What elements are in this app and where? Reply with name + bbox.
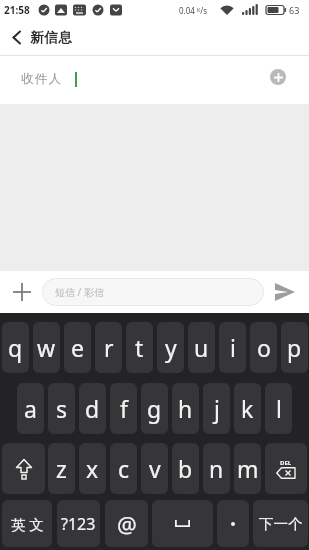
button[interactable]: k	[234, 383, 261, 434]
button[interactable]: DEL	[265, 443, 307, 494]
button[interactable]: a	[17, 383, 44, 434]
staticText: z	[56, 453, 67, 484]
button[interactable]	[274, 282, 298, 302]
button[interactable]: s	[48, 383, 75, 434]
button[interactable]	[270, 69, 286, 85]
staticText: 短信 / 彩信	[55, 285, 104, 299]
staticText: t	[135, 332, 144, 363]
staticText: g	[147, 393, 162, 424]
button[interactable]: l	[265, 383, 292, 434]
button[interactable]: q	[2, 322, 29, 373]
button[interactable]: p	[281, 322, 308, 373]
button[interactable]: d	[79, 383, 106, 434]
button[interactable]: 短信 / 彩信	[42, 278, 264, 306]
button[interactable]: x	[79, 443, 106, 494]
button[interactable]	[217, 500, 249, 547]
staticText: DEL	[280, 459, 292, 467]
button[interactable]: t	[126, 322, 153, 373]
button[interactable]: v	[141, 443, 168, 494]
staticText: d	[85, 393, 100, 424]
staticText: r	[104, 332, 114, 363]
staticText: e	[71, 332, 84, 363]
staticText: 收件人	[21, 71, 63, 87]
staticText: u	[194, 332, 209, 363]
staticText: p	[287, 332, 302, 363]
button[interactable]: @	[105, 500, 148, 547]
staticText: b	[178, 453, 193, 484]
staticText: l	[276, 393, 282, 424]
button[interactable]: y	[157, 322, 184, 373]
button[interactable]: 新信息	[0, 20, 309, 55]
staticText: v	[149, 453, 161, 484]
staticText: o	[257, 332, 271, 363]
button[interactable]: 英 文	[2, 500, 52, 547]
staticText: s	[56, 393, 68, 424]
staticText: i	[230, 332, 236, 363]
button[interactable]: n	[203, 443, 230, 494]
staticText: @	[117, 509, 137, 539]
button[interactable]: ?123	[57, 500, 100, 547]
button[interactable]	[152, 500, 213, 547]
button[interactable]: z	[48, 443, 75, 494]
staticText: h	[178, 393, 193, 424]
staticText: w	[37, 332, 56, 363]
button[interactable]: 下一个	[253, 500, 308, 547]
staticText: 英 文	[11, 514, 44, 534]
staticText: ?123	[61, 513, 96, 535]
staticText: j	[214, 393, 220, 424]
button[interactable]: c	[110, 443, 137, 494]
button[interactable]: b	[172, 443, 199, 494]
staticText: a	[24, 393, 37, 424]
staticText: y	[165, 332, 177, 363]
button[interactable]: e	[64, 322, 91, 373]
button[interactable]: h	[172, 383, 199, 434]
staticText: 21:58	[4, 3, 30, 17]
staticText: c	[118, 453, 130, 484]
button[interactable]: f	[110, 383, 137, 434]
staticText: 下一个	[259, 515, 303, 533]
staticText: 新信息	[30, 29, 73, 46]
staticText: q	[8, 332, 23, 363]
button[interactable]: 收件人	[0, 56, 309, 104]
staticText: 0.04 ᴷ/s	[179, 5, 207, 16]
button[interactable]: m	[234, 443, 261, 494]
button[interactable]: g	[141, 383, 168, 434]
button[interactable]: u	[188, 322, 215, 373]
staticText: m	[237, 453, 259, 484]
button[interactable]: i	[219, 322, 246, 373]
button[interactable]: o	[250, 322, 277, 373]
staticText: n	[209, 453, 224, 484]
staticText: f	[120, 393, 128, 424]
button[interactable]: w	[33, 322, 60, 373]
staticText: k	[241, 393, 254, 424]
button[interactable]	[2, 443, 45, 494]
button[interactable]: r	[95, 322, 122, 373]
staticText: 63	[289, 4, 300, 16]
staticText: x	[86, 453, 99, 484]
button[interactable]: j	[203, 383, 230, 434]
